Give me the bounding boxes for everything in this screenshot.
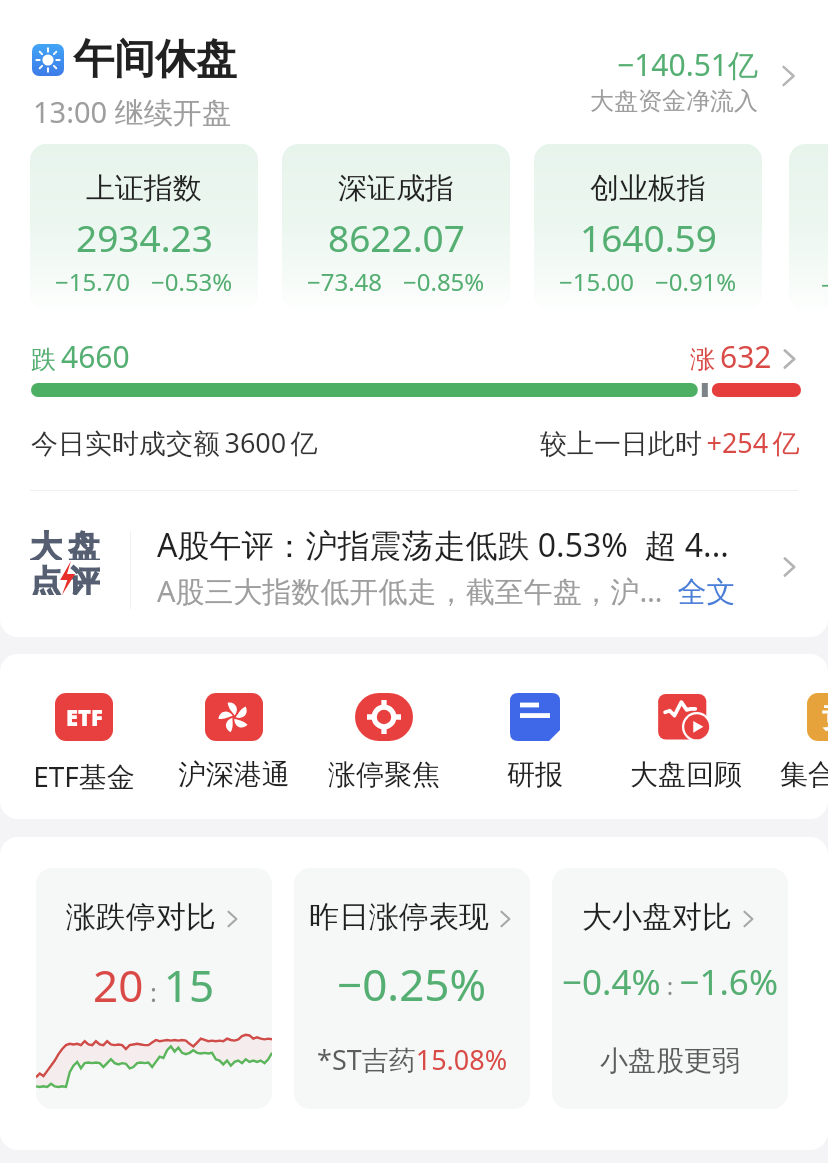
staticText: 盘 <box>68 527 100 560</box>
staticText: 大 <box>30 527 62 560</box>
button[interactable]: 沪深港通 <box>159 693 309 792</box>
staticText: 涨跌停对比 <box>66 898 216 936</box>
staticText: 大小盘对比 <box>582 898 732 936</box>
staticText: 午间休盘 <box>73 34 237 86</box>
staticText: 深证成指 <box>338 170 454 207</box>
staticText: 8622.07 <box>328 212 465 262</box>
staticText: 1640.59 <box>580 212 717 262</box>
staticText: −0.25% <box>337 954 487 1014</box>
staticText: 今日实时成交额 3600 亿 <box>31 424 318 461</box>
staticText: 较上一日此时 +254 亿 <box>540 424 800 461</box>
staticText: −0.85% <box>403 265 485 298</box>
button[interactable]: 大盘回顾 <box>611 693 761 792</box>
button[interactable]: 创业板指 <box>534 144 762 310</box>
button[interactable]: 大 <box>0 505 828 630</box>
staticText: 2934.23 <box>76 212 213 262</box>
button[interactable]: 大小盘对比 <box>552 868 788 1109</box>
button[interactable]: 跌 4660 <box>0 336 828 406</box>
staticText: 大盘资金净流入 <box>590 86 758 116</box>
staticText: 创业板指 <box>590 170 706 207</box>
staticText: 涨 632 <box>690 336 772 377</box>
staticText: 昨日涨停表现 <box>309 898 489 936</box>
staticText: 20 : 15 <box>93 955 215 1015</box>
staticText: ETF基金 <box>33 757 135 795</box>
button[interactable]: −140.51亿 <box>0 44 802 116</box>
staticText: 评 <box>68 562 100 595</box>
staticText: 上证指数 <box>86 170 202 207</box>
button[interactable]: 涨跌停对比 <box>36 868 272 1109</box>
button[interactable]: 科创50指 <box>789 144 828 310</box>
staticText: 涨停聚焦 <box>328 757 440 792</box>
staticText: 点 <box>30 562 62 595</box>
staticText: *ST吉药15.08% <box>317 1041 508 1078</box>
button[interactable]: 深证成指 <box>282 144 510 310</box>
staticText: ETF <box>66 702 103 732</box>
staticText: 跌 4660 <box>31 336 130 377</box>
staticText: −3.00 <box>821 268 828 301</box>
staticText: −73.48 <box>307 265 383 298</box>
button[interactable]: 竞 <box>761 693 828 792</box>
staticText: 大盘回顾 <box>630 757 742 792</box>
button[interactable]: 研报 <box>460 693 610 792</box>
staticText: 研报 <box>507 757 563 792</box>
staticText: −15.00 <box>559 265 635 298</box>
staticText: −0.53% <box>151 265 233 298</box>
staticText: 小盘股更弱 <box>600 1043 740 1078</box>
staticText: −15.70 <box>55 265 131 298</box>
staticText: 集合竞价 <box>780 757 828 792</box>
button[interactable]: 涨停聚焦 <box>309 693 459 792</box>
staticText: A股三大指数低开低走，截至午盘，沪… 全文 <box>157 571 736 611</box>
staticText: 沪深港通 <box>178 757 290 792</box>
button[interactable]: 上证指数 <box>30 144 258 310</box>
staticText: −0.4% : −1.6% <box>562 958 778 1006</box>
button[interactable]: ETF <box>9 693 159 795</box>
button[interactable]: 昨日涨停表现 <box>294 868 530 1109</box>
staticText: −0.91% <box>655 265 737 298</box>
staticText: A股午评：沪指震荡走低跌 0.53% 超 4... <box>157 523 729 567</box>
staticText: 竞 <box>822 700 828 735</box>
staticText: 13:00 继续开盘 <box>33 92 231 132</box>
staticText: −140.51亿 <box>617 44 758 85</box>
